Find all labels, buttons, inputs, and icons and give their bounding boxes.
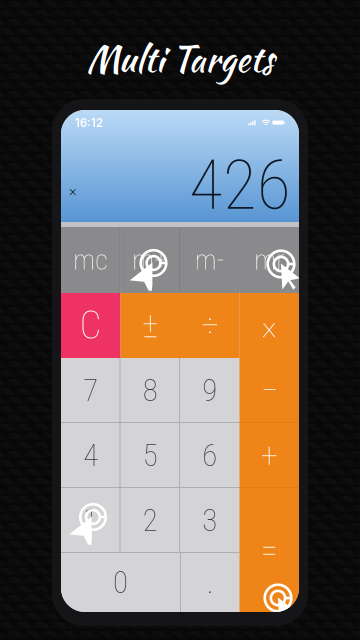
staticText: 6 xyxy=(202,437,217,474)
staticText: m- xyxy=(195,244,225,276)
button[interactable]: mr xyxy=(239,227,299,293)
staticText: m+ xyxy=(132,244,168,276)
button[interactable]: 6 xyxy=(180,423,239,488)
button[interactable]: + xyxy=(239,423,299,488)
staticText: ± xyxy=(142,305,158,346)
button[interactable]: 1 xyxy=(61,488,120,553)
staticText: × xyxy=(69,182,77,200)
button[interactable]: m- xyxy=(180,227,239,293)
button[interactable]: mc xyxy=(61,227,120,293)
staticText: mc xyxy=(73,244,108,276)
staticText: . xyxy=(207,564,214,601)
staticText: 3 xyxy=(202,502,217,539)
staticText: 426 xyxy=(189,144,291,226)
button[interactable]: 7 xyxy=(61,358,120,423)
staticText: 16:12 xyxy=(75,116,103,130)
button[interactable]: − xyxy=(239,358,299,423)
button[interactable]: 8 xyxy=(120,358,180,423)
staticText: × xyxy=(261,305,277,346)
staticText: = xyxy=(261,530,278,570)
staticText: 9 xyxy=(202,372,217,409)
button[interactable]: ÷ xyxy=(180,293,239,358)
staticText: 1 xyxy=(83,502,98,539)
button[interactable]: m+ xyxy=(120,227,180,293)
button[interactable]: × xyxy=(239,293,299,358)
button[interactable]: = xyxy=(239,488,299,612)
button[interactable]: 9 xyxy=(180,358,239,423)
staticText: 7 xyxy=(83,372,98,409)
staticText: ÷ xyxy=(201,305,218,346)
staticText: 8 xyxy=(143,372,158,409)
button[interactable]: 4 xyxy=(61,423,120,488)
staticText: 4 xyxy=(83,437,98,474)
button[interactable]: 2 xyxy=(120,488,180,553)
staticText: 0 xyxy=(113,564,128,601)
button[interactable]: 3 xyxy=(180,488,239,553)
staticText: + xyxy=(261,435,278,476)
button[interactable]: C xyxy=(61,293,120,358)
staticText: 5 xyxy=(143,437,158,474)
staticText: 2 xyxy=(143,502,158,539)
staticText: C xyxy=(80,303,102,348)
staticText: Multi Targets xyxy=(86,33,273,85)
staticText: − xyxy=(261,370,278,411)
button[interactable]: ± xyxy=(120,293,180,358)
button[interactable]: 5 xyxy=(120,423,180,488)
staticText: mr xyxy=(254,244,284,276)
button[interactable]: . xyxy=(181,553,239,612)
button[interactable]: 0 xyxy=(61,553,180,612)
